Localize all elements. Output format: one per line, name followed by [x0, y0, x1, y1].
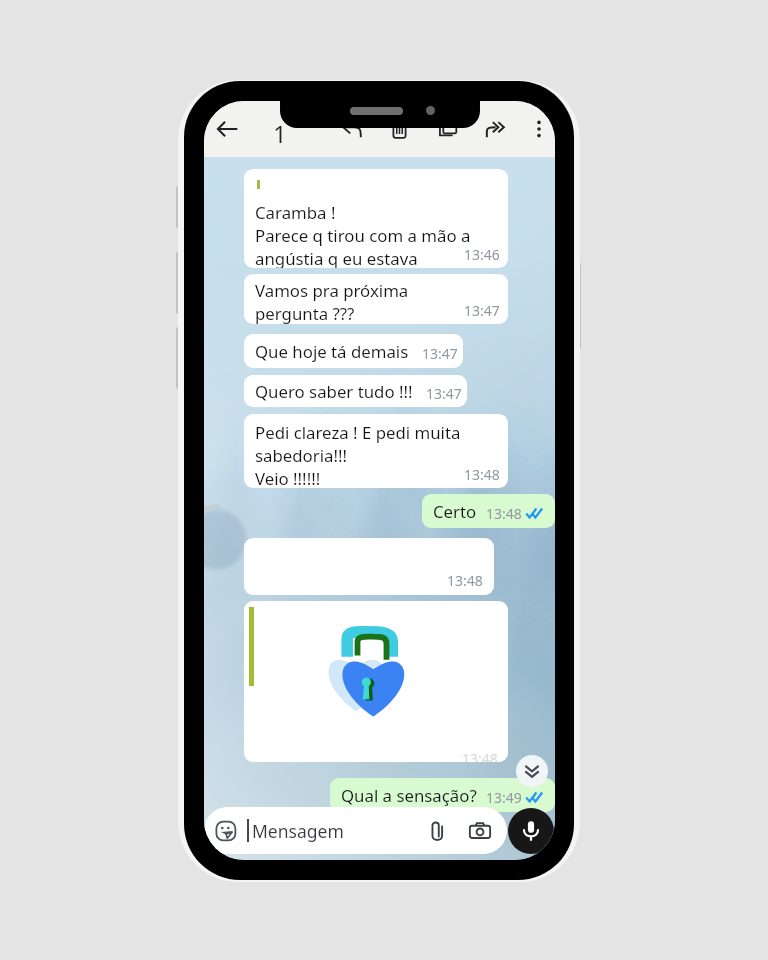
staticText: Mensagem	[252, 819, 344, 843]
button[interactable]: Attach	[424, 818, 450, 844]
staticText: 1	[273, 117, 287, 150]
staticText: angústia q eu estava	[255, 247, 418, 268]
staticText: Quero saber tudo !!!	[255, 380, 413, 403]
button[interactable]: Delete	[381, 111, 417, 147]
staticText: pergunta ???	[255, 302, 355, 324]
button[interactable]: Reply	[334, 111, 370, 147]
staticText: 13:48	[462, 749, 498, 762]
button[interactable]: Caramba !	[244, 169, 508, 268]
staticText: Pedi clareza ! E pedi muita	[255, 421, 461, 444]
button[interactable]: Pedi clareza ! E pedi muita	[244, 414, 508, 488]
button[interactable]: Voice message	[508, 808, 554, 854]
button[interactable]: Camera	[467, 818, 493, 844]
staticText: 13:47	[422, 344, 458, 363]
button[interactable]: Copy	[429, 111, 465, 147]
staticText: 13:48	[486, 504, 522, 523]
staticText: Que hoje tá demais	[255, 340, 409, 363]
button[interactable]: Scroll to bottom	[516, 755, 548, 787]
button[interactable]: Back	[209, 111, 245, 147]
staticText: 13:47	[464, 301, 500, 320]
button[interactable]: Forward	[478, 111, 514, 147]
staticText: 13:48	[447, 571, 483, 590]
staticText: Vamos pra próxima	[255, 279, 409, 302]
button[interactable]: Vamos pra próxima	[244, 274, 508, 324]
staticText: 13:46	[464, 245, 500, 264]
staticText: Caramba !	[255, 201, 336, 224]
button[interactable]: Que hoje tá demais	[244, 334, 463, 368]
staticText: 13:49	[486, 788, 522, 807]
staticText: Qual a sensação?	[341, 784, 477, 807]
button[interactable]: Certo	[422, 494, 555, 528]
staticText: 13:48	[464, 465, 500, 484]
button[interactable]: 13:48	[244, 538, 494, 595]
button[interactable]: Mensagem	[204, 807, 507, 854]
staticText: Parece q tirou com a mão a	[255, 224, 471, 247]
staticText: Veio !!!!!!	[255, 467, 321, 488]
button[interactable]: 13:48	[244, 601, 508, 762]
staticText: sabedoria!!!	[255, 444, 348, 467]
staticText: 13:47	[426, 384, 462, 403]
staticText: Certo	[433, 500, 477, 523]
button[interactable]: Quero saber tudo !!!	[244, 375, 467, 407]
button[interactable]: Qual a sensação?	[330, 778, 555, 812]
button[interactable]: More options	[521, 111, 555, 147]
